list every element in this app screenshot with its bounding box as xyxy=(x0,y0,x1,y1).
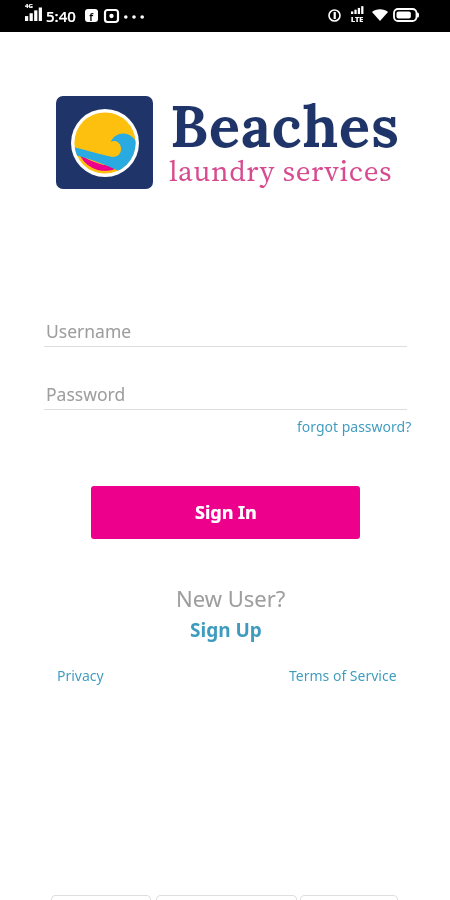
staticText: Privacy xyxy=(57,666,104,685)
staticText: Password xyxy=(46,382,126,406)
staticText: Sign In xyxy=(195,500,257,525)
button[interactable]: Option two xyxy=(156,895,297,900)
staticText: Beaches xyxy=(170,89,400,163)
staticText: 4G xyxy=(25,2,33,10)
staticText: f xyxy=(89,9,94,22)
button[interactable]: Sign In xyxy=(91,486,360,539)
button[interactable]: Password xyxy=(44,382,407,410)
staticText: Terms of Service xyxy=(289,666,397,685)
button[interactable]: Username xyxy=(44,319,407,347)
button[interactable]: Option three xyxy=(300,895,398,900)
button[interactable]: Sign Up xyxy=(190,617,262,643)
staticText: Sign Up xyxy=(190,617,262,643)
button[interactable]: Privacy xyxy=(57,666,104,685)
staticText: LTE xyxy=(351,14,364,24)
staticText: laundry services xyxy=(169,151,393,191)
staticText: forgot password? xyxy=(297,417,412,436)
staticText: New User? xyxy=(176,583,286,613)
button[interactable]: Terms of Service xyxy=(289,666,397,685)
button[interactable]: forgot password? xyxy=(297,417,412,436)
staticText: Username xyxy=(46,319,132,343)
staticText: 5:40 xyxy=(46,6,76,26)
button[interactable]: Option one xyxy=(51,895,151,900)
